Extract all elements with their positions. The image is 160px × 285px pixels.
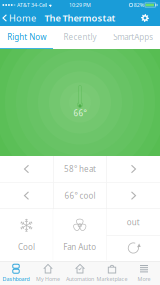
staticText: Dashboard <box>2 275 29 282</box>
button[interactable]: Marketplace <box>96 262 128 285</box>
staticText: My Home <box>36 275 60 282</box>
staticText: out <box>127 217 140 227</box>
button[interactable]: Increase 58° heat <box>107 156 160 182</box>
button[interactable]: Cool <box>0 209 53 260</box>
button[interactable]: Decrease 58° heat <box>0 156 53 182</box>
button[interactable]: Right Now <box>0 26 53 49</box>
button[interactable]: More <box>128 262 160 285</box>
staticText: Fan Auto <box>63 242 96 252</box>
button[interactable]: Home <box>0 10 40 26</box>
staticText: Cool <box>18 242 35 252</box>
staticText: The Thermostat <box>44 12 115 24</box>
staticText: More <box>137 275 150 282</box>
staticText: AT&T 34-Cell <box>17 1 47 9</box>
staticText: Home <box>9 12 36 24</box>
button[interactable]: Fan Auto <box>53 209 106 260</box>
staticText: 82% <box>134 1 144 9</box>
button[interactable]: Recently <box>53 26 107 49</box>
staticText: 66° cool <box>64 190 95 201</box>
staticText: 66° <box>73 108 86 118</box>
staticText: SmartApps <box>113 32 153 42</box>
button[interactable]: Decrease 66° cool <box>0 183 53 209</box>
staticText: Marketplace <box>96 275 127 282</box>
staticText: Right Now <box>7 32 46 42</box>
staticText: Automation <box>66 275 94 282</box>
button[interactable]: out <box>107 209 160 235</box>
staticText: Recently <box>63 32 96 42</box>
staticText: 58° heat <box>64 164 96 174</box>
button[interactable]: SmartApps <box>107 26 160 49</box>
button[interactable]: Settings <box>141 10 160 26</box>
button[interactable]: My Home <box>32 262 64 285</box>
button[interactable]: Refresh <box>107 236 160 260</box>
button[interactable]: Increase 66° cool <box>107 183 160 209</box>
staticText: 10:29 PM <box>69 1 91 9</box>
button[interactable]: Automation <box>64 262 96 285</box>
button[interactable]: Dashboard <box>0 262 32 285</box>
